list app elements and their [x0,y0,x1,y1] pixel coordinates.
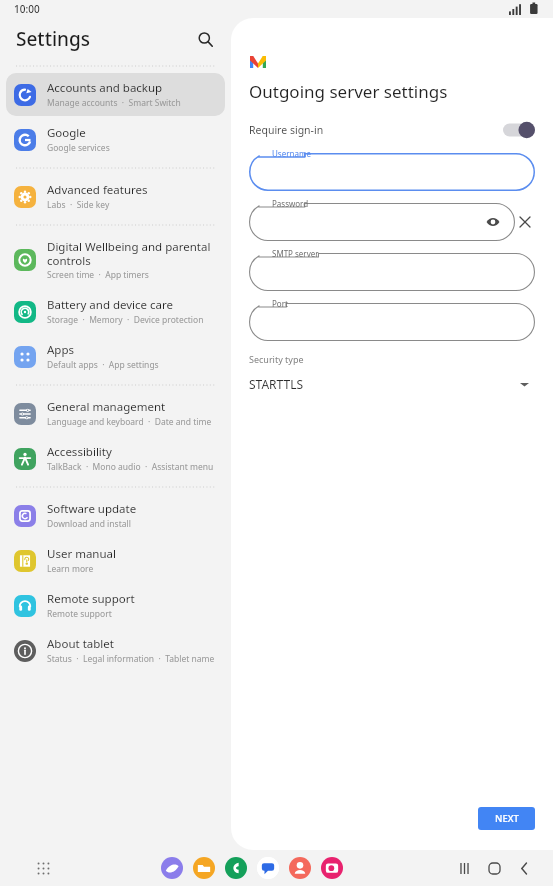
button[interactable]: My Files [193,857,215,879]
button[interactable]: Camera [321,857,343,879]
staticText: Software update [47,501,137,517]
staticText: Apps [47,342,75,358]
staticText: Status · Legal information · Tablet name [47,653,215,665]
button[interactable]: Advanced features [6,175,225,218]
button[interactable]: All apps [30,855,56,881]
staticText: Language and keyboard · Date and time [47,416,212,428]
button[interactable]: Require sign-in toggle, on [503,121,535,139]
button[interactable]: Show password [483,212,503,232]
button[interactable]: NEXT [478,807,535,830]
button[interactable]: Password [249,203,515,241]
staticText: Settings [16,26,90,52]
staticText: Remote support [47,591,135,607]
staticText: NEXT [495,812,519,825]
staticText: Screen time · App timers [47,269,149,281]
button[interactable]: Messages [257,857,279,879]
button[interactable]: SMTP server [249,253,535,291]
button[interactable]: Port [249,303,535,341]
button[interactable]: Username [249,153,535,191]
staticText: TalkBack · Mono audio · Assistant menu [47,461,214,473]
staticText: Google [47,125,86,141]
staticText: Learn more [47,563,94,575]
button[interactable]: Back [509,853,539,883]
button[interactable]: STARTTLS [231,373,553,395]
button[interactable]: Clear password [515,212,535,232]
staticText: Accessibility [47,444,112,460]
staticText: Port [272,298,288,309]
button[interactable]: Search settings [189,23,221,55]
button[interactable]: Phone [225,857,247,879]
button[interactable]: Accounts and backup [6,73,225,116]
staticText: Security type [249,353,304,365]
button[interactable]: Accessibility [6,437,225,480]
button[interactable]: Battery and device care [6,290,225,333]
staticText: User manual [47,546,116,562]
staticText: STARTTLS [249,376,304,392]
staticText: 10:00 [14,2,40,16]
staticText: Manage accounts · Smart Switch [47,97,181,109]
button[interactable]: Remote support [6,584,225,627]
staticText: Remote support [47,608,112,620]
staticText: Require sign-in [249,123,324,137]
button[interactable]: Software update [6,494,225,537]
staticText: About tablet [47,636,114,652]
button[interactable]: User manual [6,539,225,582]
button[interactable]: Home [479,853,509,883]
button[interactable]: Recents [449,853,479,883]
staticText: Google services [47,142,110,154]
staticText: Download and install [47,518,131,530]
staticText: Digital Wellbeing and parental controls [47,239,219,268]
button[interactable]: Internet [161,857,183,879]
staticText: Labs · Side key [47,199,110,211]
staticText: Username [272,148,311,159]
button[interactable]: Digital Wellbeing and parental controls [6,232,225,288]
button[interactable]: Require sign-in [231,117,553,143]
staticText: SMTP server [272,248,319,259]
staticText: Storage · Memory · Device protection [47,314,204,326]
staticText: General management [47,399,166,415]
button[interactable]: About tablet [6,629,225,672]
button[interactable]: Contacts [289,857,311,879]
button[interactable]: Apps [6,335,225,378]
staticText: Battery and device care [47,297,174,313]
staticText: Default apps · App settings [47,359,159,371]
staticText: Advanced features [47,182,148,198]
staticText: Password [272,198,309,209]
button[interactable]: General management [6,392,225,435]
button[interactable]: Google [6,118,225,161]
staticText: Outgoing server settings [249,80,448,103]
staticText: Accounts and backup [47,80,163,96]
